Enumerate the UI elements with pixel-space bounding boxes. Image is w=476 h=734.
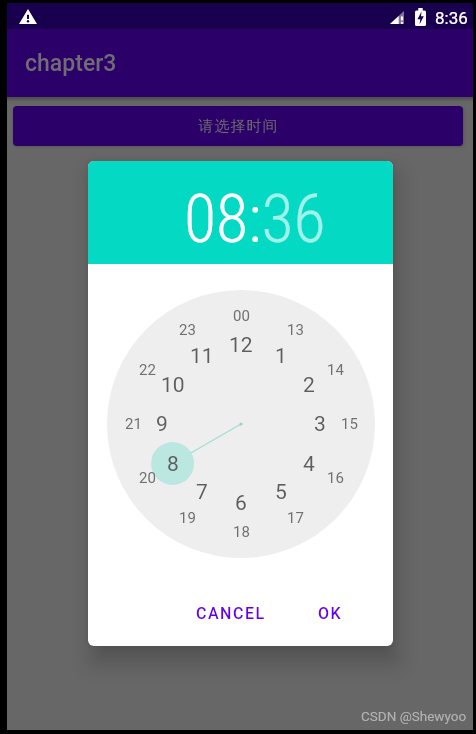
staticText: 18: [233, 523, 250, 541]
staticText: chapter3: [25, 50, 117, 77]
staticText: 16: [327, 469, 344, 487]
staticText: 10: [161, 373, 185, 398]
staticText: 2: [303, 373, 315, 398]
staticText: 13: [287, 321, 304, 339]
staticText: 8:36: [435, 8, 468, 28]
staticText: 22: [139, 361, 156, 379]
staticText: 00: [233, 307, 250, 325]
staticText: 20: [139, 469, 156, 487]
staticText: 1: [275, 344, 287, 369]
staticText: 8: [167, 452, 179, 477]
staticText: 21: [125, 415, 142, 433]
staticText: 17: [287, 509, 304, 527]
staticText: 12: [229, 333, 253, 358]
button[interactable]: OK: [300, 595, 360, 631]
staticText: 9: [156, 412, 168, 437]
staticText: CANCEL: [196, 604, 266, 623]
staticText: 6: [235, 491, 247, 516]
staticText: 4: [303, 452, 315, 477]
staticText: 3: [314, 412, 326, 437]
staticText: CSDN @Shewyoo: [361, 708, 467, 724]
staticText: 19: [179, 509, 196, 527]
staticText: 5: [275, 480, 287, 505]
staticText: OK: [318, 604, 343, 623]
button[interactable]: 请选择时间: [13, 106, 463, 146]
button[interactable]: CANCEL: [181, 595, 281, 631]
staticText: 请选择时间: [198, 117, 278, 136]
staticText: 11: [190, 344, 214, 369]
staticText: 23: [179, 321, 196, 339]
staticText: 08:36: [184, 181, 326, 258]
staticText: 14: [327, 361, 344, 379]
staticText: 7: [196, 480, 208, 505]
staticText: 15: [341, 415, 358, 433]
